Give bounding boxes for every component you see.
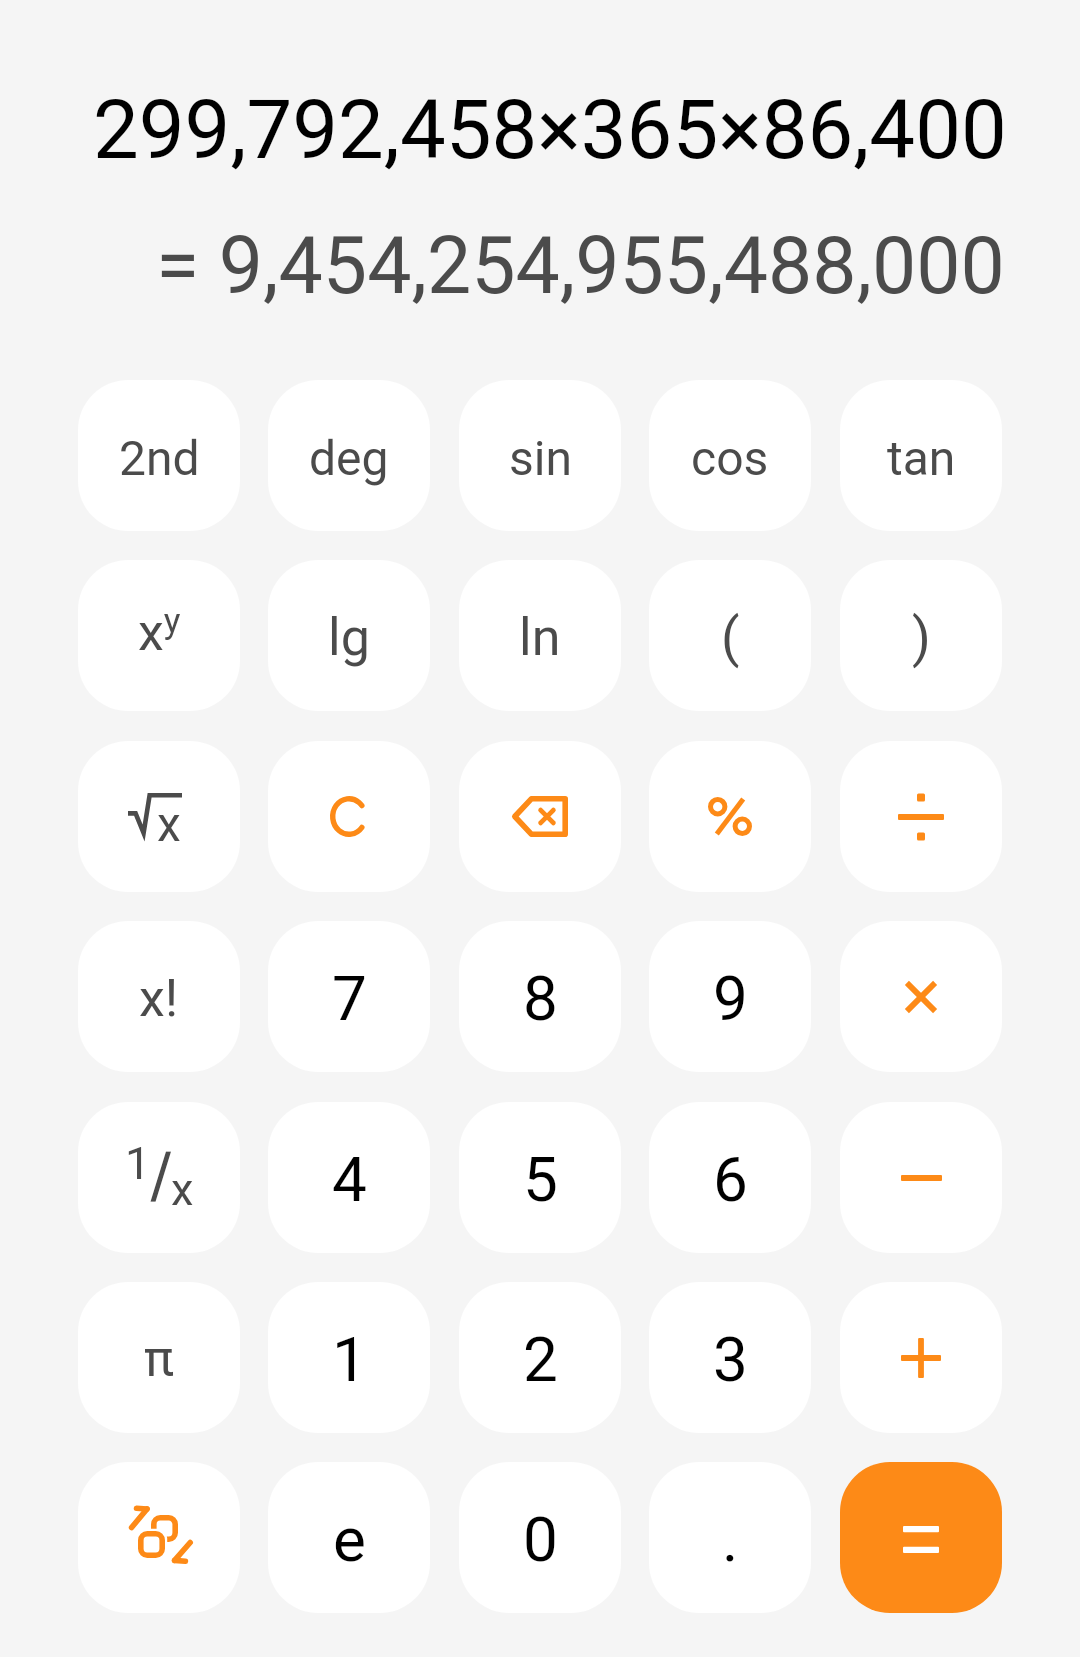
staticText: x xyxy=(157,796,181,841)
button[interactable]: 1∕x xyxy=(78,1102,240,1253)
button[interactable]: 5 xyxy=(459,1102,621,1253)
staticText: lg xyxy=(328,607,370,668)
button[interactable]: ln xyxy=(459,560,621,711)
staticText: xy xyxy=(138,600,181,663)
staticText: cos xyxy=(691,430,769,486)
staticText: 9 xyxy=(713,962,748,1035)
other: Backspace xyxy=(512,796,568,837)
button[interactable]: Clear xyxy=(268,741,430,892)
staticText: deg xyxy=(309,430,389,486)
button[interactable]: Minus xyxy=(840,1102,1002,1253)
button[interactable]: 0 xyxy=(459,1462,621,1613)
staticText: 5 xyxy=(523,1143,558,1216)
button[interactable]: 2 xyxy=(459,1282,621,1433)
button[interactable]: deg xyxy=(268,380,430,531)
staticText: 7 xyxy=(332,962,367,1035)
other: Minus xyxy=(901,1173,942,1183)
button[interactable]: sin xyxy=(459,380,621,531)
button[interactable]: lg xyxy=(268,560,430,711)
button[interactable]: 7 xyxy=(268,921,430,1072)
staticText: sin xyxy=(509,430,572,486)
staticText: 4 xyxy=(332,1143,367,1216)
button[interactable]: Equals xyxy=(840,1462,1002,1613)
button[interactable]: 1 xyxy=(268,1282,430,1433)
staticText: 299,792,458×365×86,400 xyxy=(93,82,1007,178)
button[interactable]: Unit converter xyxy=(78,1462,240,1613)
other: Percent xyxy=(708,797,752,836)
staticText: ( xyxy=(721,606,740,669)
button[interactable]: . xyxy=(649,1462,811,1613)
staticText: e xyxy=(333,1503,366,1576)
button[interactable]: Plus xyxy=(840,1282,1002,1433)
other: Divide xyxy=(898,794,944,840)
staticText: 0 xyxy=(523,1503,558,1576)
staticText: 2nd xyxy=(119,430,200,486)
other: Equals xyxy=(903,1526,939,1553)
button[interactable]: x! xyxy=(78,921,240,1072)
button[interactable]: tan xyxy=(840,380,1002,531)
button[interactable]: π xyxy=(78,1282,240,1433)
button[interactable]: 6 xyxy=(649,1102,811,1253)
staticText: . xyxy=(722,1503,739,1576)
staticText: 2 xyxy=(523,1323,558,1396)
staticText: 6 xyxy=(713,1143,748,1216)
staticText: = 9,454,254,955,488,000 xyxy=(156,220,1005,312)
button[interactable]: Percent xyxy=(649,741,811,892)
button[interactable]: cos xyxy=(649,380,811,531)
other: Multiply xyxy=(904,980,938,1014)
button[interactable]: 9 xyxy=(649,921,811,1072)
button[interactable]: Multiply xyxy=(840,921,1002,1072)
button[interactable]: 4 xyxy=(268,1102,430,1253)
staticText: 8 xyxy=(523,962,558,1035)
staticText: x! xyxy=(139,968,179,1029)
staticText: 1∕x xyxy=(125,1137,194,1216)
button[interactable]: Divide xyxy=(840,741,1002,892)
staticText: 3 xyxy=(713,1323,748,1396)
staticText: 1 xyxy=(332,1323,367,1396)
button[interactable]: ( xyxy=(649,560,811,711)
other: Plus xyxy=(901,1338,941,1378)
button[interactable]: xy xyxy=(78,560,240,711)
other: Clear xyxy=(330,796,368,837)
button[interactable]: 8 xyxy=(459,921,621,1072)
button[interactable]: x xyxy=(78,741,240,892)
button[interactable]: Backspace xyxy=(459,741,621,892)
staticText: π xyxy=(144,1330,174,1389)
button[interactable]: 3 xyxy=(649,1282,811,1433)
staticText: ) xyxy=(912,606,931,669)
staticText: tan xyxy=(887,430,956,486)
staticText: ln xyxy=(519,607,561,668)
button[interactable]: e xyxy=(268,1462,430,1613)
button[interactable]: ) xyxy=(840,560,1002,711)
other: Unit converter xyxy=(129,1505,193,1564)
button[interactable]: 2nd xyxy=(78,380,240,531)
